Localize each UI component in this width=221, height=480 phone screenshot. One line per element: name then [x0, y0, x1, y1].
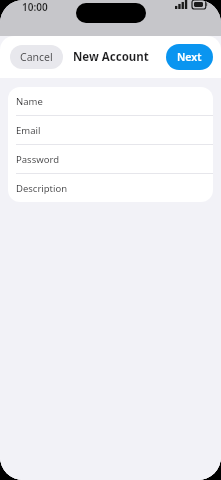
- staticText: Password: [16, 153, 59, 166]
- button[interactable]: Password: [8, 145, 213, 174]
- staticText: Description: [16, 182, 68, 195]
- staticText: Email: [16, 124, 41, 137]
- button[interactable]: Email: [8, 116, 213, 145]
- staticText: Cancel: [20, 50, 53, 64]
- staticText: Next: [177, 50, 202, 64]
- button[interactable]: Cancel: [10, 45, 63, 69]
- button[interactable]: Next: [166, 44, 213, 70]
- button[interactable]: Name: [8, 87, 213, 116]
- button[interactable]: Description: [8, 174, 213, 202]
- staticText: New Account: [73, 49, 149, 65]
- staticText: 10:00: [22, 0, 48, 14]
- staticText: Name: [16, 95, 43, 108]
